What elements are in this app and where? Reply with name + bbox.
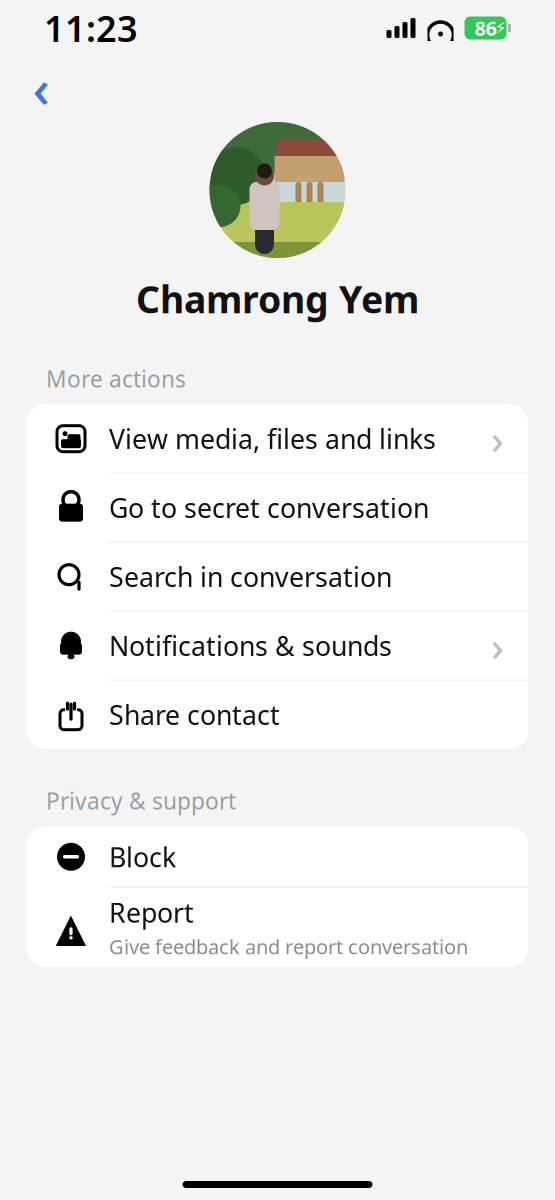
staticText: Share contact bbox=[109, 697, 280, 732]
staticText: Give feedback and report conversation bbox=[109, 933, 468, 960]
staticText: Report bbox=[109, 895, 194, 930]
button[interactable]: Go to secret conversation bbox=[27, 474, 528, 542]
staticText: ‹ bbox=[32, 52, 49, 122]
staticText: Chamrong Yem bbox=[136, 274, 419, 324]
button[interactable]: ▲ bbox=[27, 888, 528, 967]
staticText: 86 bbox=[474, 15, 496, 41]
button[interactable]: Notifications & sounds bbox=[27, 612, 528, 680]
staticText: More actions bbox=[46, 364, 186, 394]
staticText: ▲ bbox=[55, 905, 86, 950]
staticText: Search in conversation bbox=[109, 559, 392, 594]
staticText: View media, files and links bbox=[109, 421, 436, 456]
staticText: Block bbox=[109, 839, 176, 874]
button[interactable]: View media, files and links bbox=[27, 405, 528, 473]
button[interactable]: Block bbox=[27, 827, 528, 887]
staticText: 11:23 bbox=[44, 4, 138, 52]
staticText: Privacy & support bbox=[46, 786, 236, 816]
button[interactable]: Search in conversation bbox=[27, 543, 528, 611]
staticText: Go to secret conversation bbox=[109, 490, 429, 525]
button[interactable]: Back bbox=[14, 64, 68, 110]
staticText: › bbox=[491, 412, 504, 465]
staticText: ⚡︎ bbox=[494, 18, 506, 38]
button[interactable]: Share contact bbox=[27, 681, 528, 749]
staticText: › bbox=[491, 619, 504, 672]
staticText: Notifications & sounds bbox=[109, 628, 392, 663]
